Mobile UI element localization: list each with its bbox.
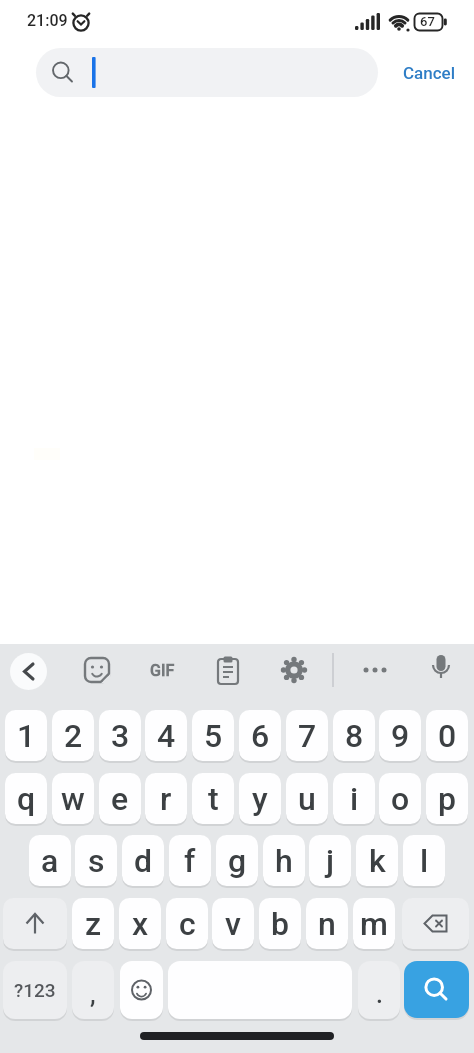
staticText: l — [420, 842, 429, 880]
button[interactable]: x — [119, 898, 161, 949]
staticText: g — [228, 842, 247, 880]
staticText: 5 — [204, 717, 223, 755]
button[interactable]: 9 — [379, 710, 421, 761]
button[interactable]: 4 — [145, 710, 187, 761]
button[interactable] — [168, 961, 352, 1019]
button[interactable]: r — [145, 773, 187, 824]
staticText: n — [318, 905, 336, 943]
button[interactable]: , — [72, 961, 114, 1019]
button[interactable] — [36, 48, 378, 97]
button[interactable]: m — [353, 898, 395, 949]
button[interactable]: 3 — [99, 710, 141, 761]
staticText: u — [298, 780, 316, 818]
button[interactable] — [404, 961, 469, 1018]
button[interactable]: b — [259, 898, 301, 949]
button[interactable] — [120, 961, 163, 1019]
button[interactable]: . — [358, 961, 400, 1019]
button[interactable] — [213, 654, 243, 686]
button[interactable]: t — [192, 773, 234, 824]
staticText: 2 — [64, 717, 83, 755]
staticText: y — [252, 780, 268, 818]
button[interactable]: h — [263, 835, 305, 886]
button[interactable] — [10, 653, 47, 690]
staticText: 21:09 — [27, 11, 68, 30]
button[interactable]: d — [122, 835, 164, 886]
staticText: 67 — [420, 14, 435, 29]
button[interactable]: f — [169, 835, 211, 886]
button[interactable] — [3, 898, 67, 949]
staticText: 9 — [391, 717, 410, 755]
button[interactable] — [82, 655, 112, 685]
button[interactable]: g — [216, 835, 258, 886]
staticText: . — [376, 980, 383, 1009]
button[interactable]: s — [75, 835, 117, 886]
button[interactable]: k — [356, 835, 398, 886]
staticText: k — [369, 842, 386, 880]
staticText: 1 — [17, 717, 36, 755]
button[interactable]: 2 — [52, 710, 94, 761]
button[interactable]: z — [72, 898, 114, 949]
button[interactable]: n — [306, 898, 348, 949]
staticText: w — [61, 780, 85, 818]
staticText: 6 — [251, 717, 270, 755]
staticText: , — [90, 980, 96, 1009]
button[interactable]: 1 — [5, 710, 47, 761]
button[interactable]: y — [239, 773, 281, 824]
button[interactable]: 5 — [192, 710, 234, 761]
staticText: m — [360, 905, 388, 943]
button[interactable] — [426, 652, 456, 688]
button[interactable]: e — [99, 773, 141, 824]
button[interactable]: 0 — [426, 710, 468, 761]
button[interactable] — [360, 655, 390, 685]
button[interactable]: i — [333, 773, 375, 824]
button[interactable] — [279, 655, 309, 685]
staticText: 8 — [345, 717, 364, 755]
staticText: t — [208, 780, 219, 818]
button[interactable]: 8 — [333, 710, 375, 761]
button[interactable]: Cancel — [394, 56, 464, 90]
button[interactable] — [402, 898, 469, 949]
button[interactable]: p — [426, 773, 468, 824]
staticText: v — [225, 905, 241, 943]
button[interactable]: v — [212, 898, 254, 949]
staticText: z — [85, 905, 102, 943]
staticText: j — [326, 842, 335, 880]
staticText: q — [17, 780, 36, 818]
staticText: p — [438, 780, 456, 818]
staticText: 7 — [298, 717, 317, 755]
staticText: d — [134, 842, 153, 880]
staticText: a — [41, 842, 59, 880]
button[interactable]: u — [286, 773, 328, 824]
button[interactable]: l — [403, 835, 445, 886]
staticText: b — [271, 905, 289, 943]
staticText: o — [391, 780, 410, 818]
button[interactable]: ?123 — [3, 961, 67, 1019]
staticText: i — [350, 780, 359, 818]
button[interactable]: o — [379, 773, 421, 824]
staticText: h — [275, 842, 293, 880]
staticText: x — [132, 905, 149, 943]
button[interactable]: j — [309, 835, 351, 886]
staticText: 3 — [111, 717, 130, 755]
staticText: c — [179, 905, 196, 943]
button[interactable]: w — [52, 773, 94, 824]
staticText: f — [184, 842, 196, 880]
staticText: ?123 — [14, 979, 56, 1001]
staticText: GIF — [150, 661, 175, 680]
button[interactable]: 7 — [286, 710, 328, 761]
staticText: s — [88, 842, 105, 880]
staticText: r — [160, 780, 172, 818]
staticText: 4 — [157, 717, 176, 755]
staticText: 0 — [438, 717, 457, 755]
staticText: Cancel — [403, 63, 456, 83]
button[interactable]: a — [29, 835, 71, 886]
button[interactable]: GIF — [142, 655, 182, 685]
button[interactable]: 6 — [239, 710, 281, 761]
button[interactable]: c — [166, 898, 208, 949]
button[interactable]: q — [5, 773, 47, 824]
staticText: e — [111, 780, 129, 818]
